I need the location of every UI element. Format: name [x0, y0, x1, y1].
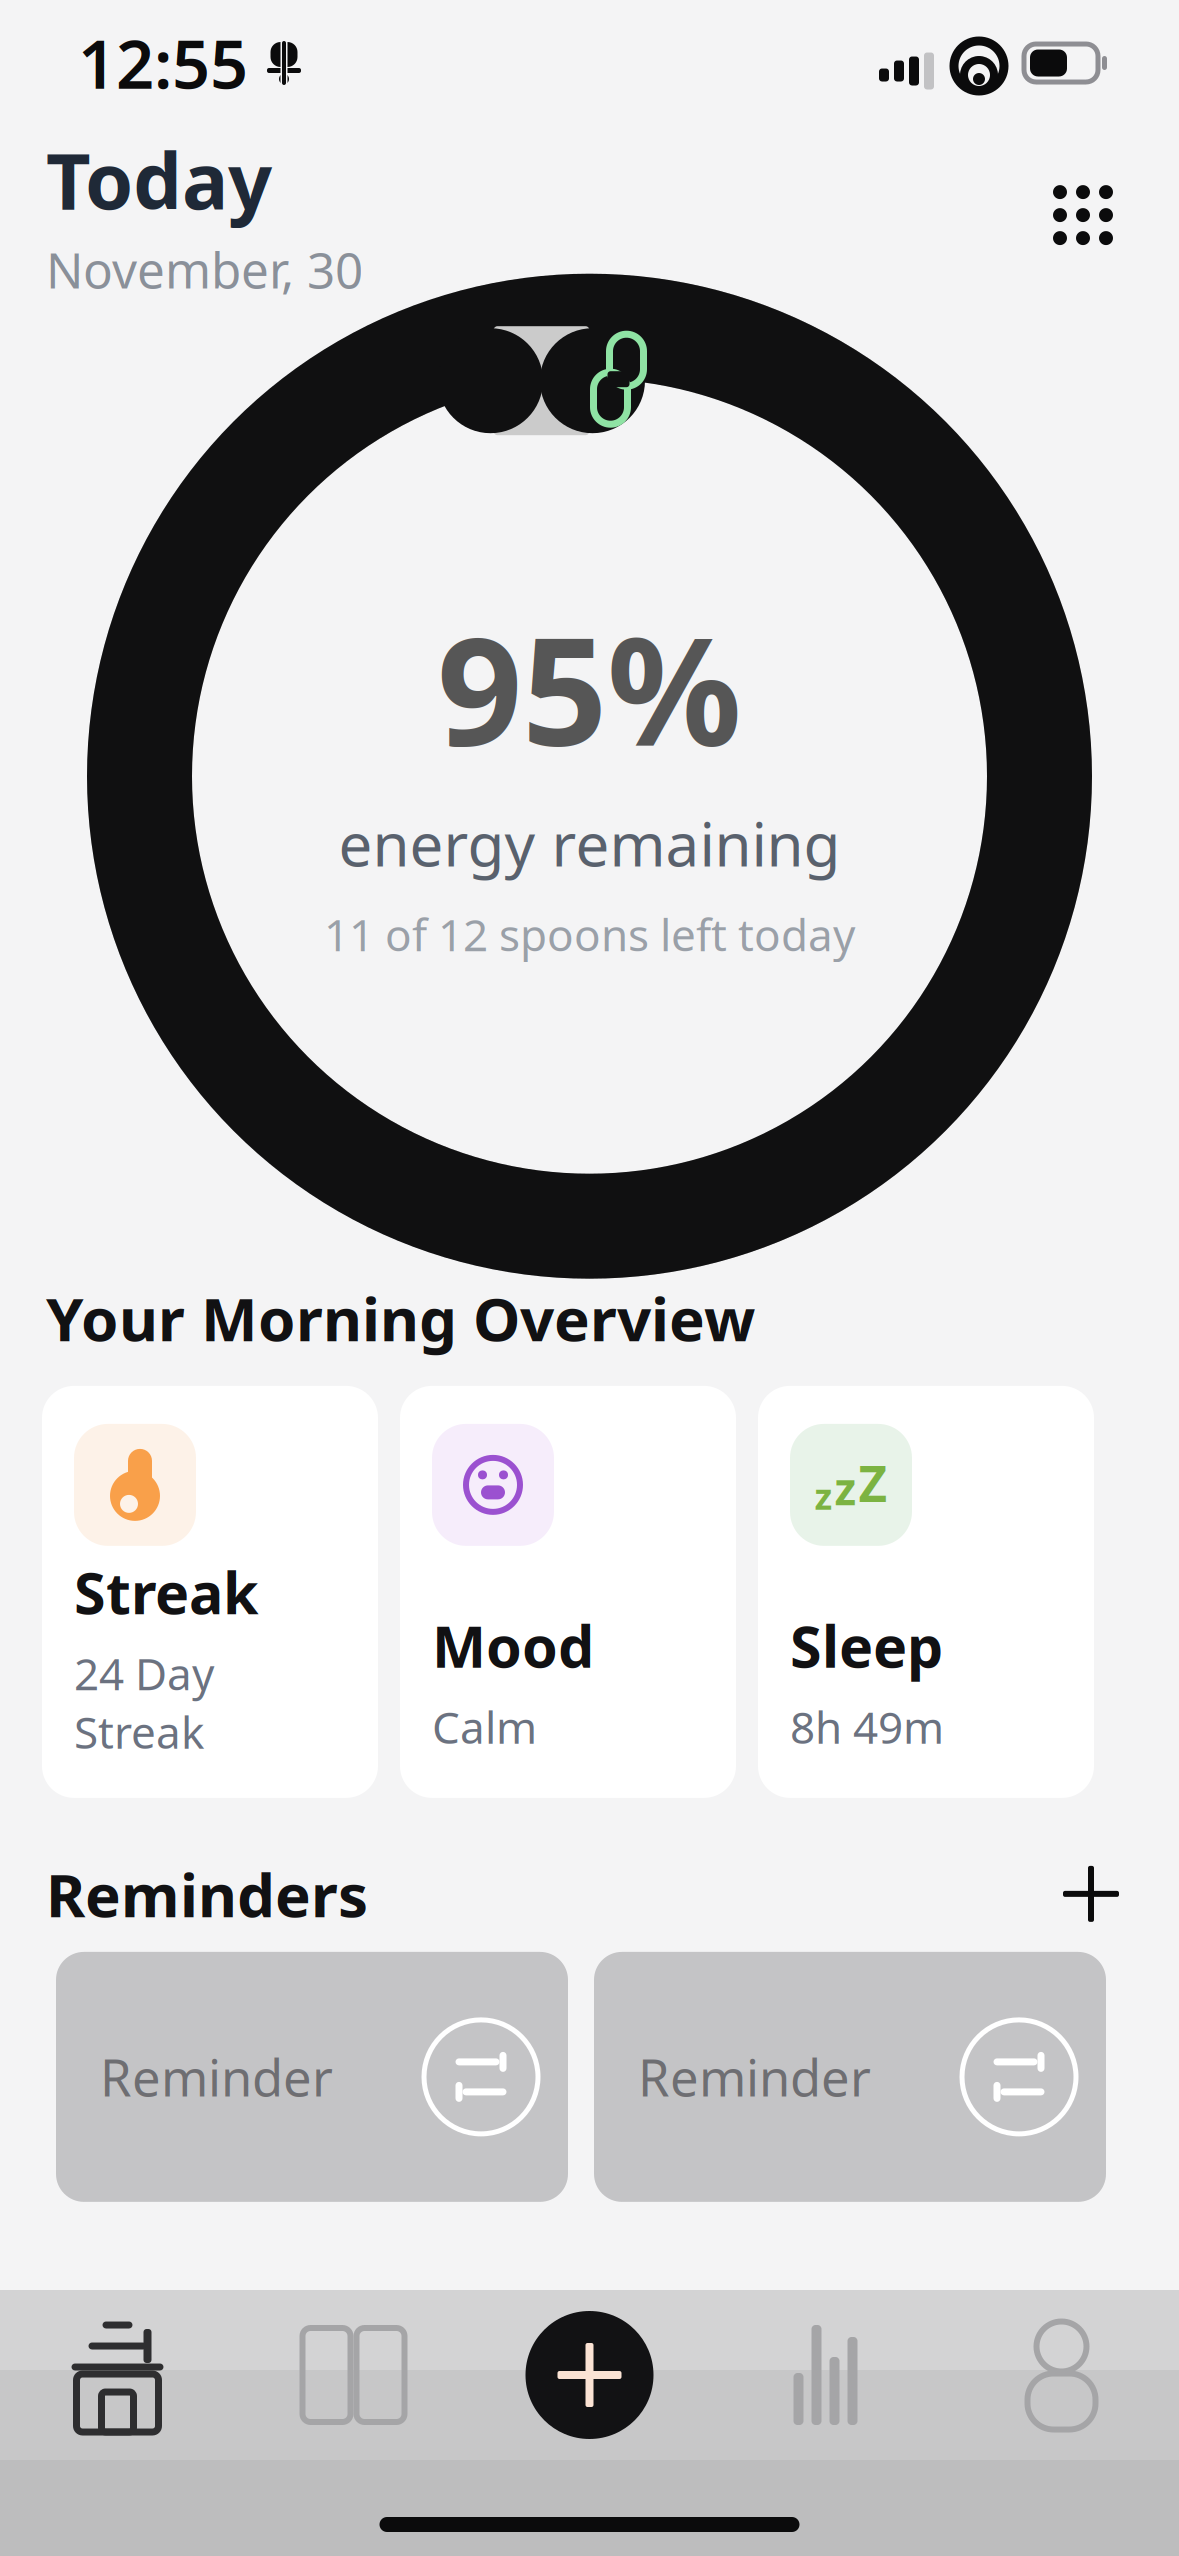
staticText: z	[834, 1459, 856, 1517]
staticText: Reminder	[100, 2043, 333, 2110]
staticText: Today	[46, 128, 272, 231]
button[interactable]: Insights	[707, 2290, 943, 2460]
staticText: Z	[858, 1450, 887, 1515]
button[interactable]: z	[758, 1386, 1094, 1798]
staticText: 12:55	[78, 19, 248, 107]
button[interactable]: Reminder	[594, 1952, 1106, 2202]
button[interactable]: Profile	[943, 2290, 1179, 2460]
staticText: 24 Day Streak	[74, 1644, 214, 1761]
staticText: November, 30	[46, 237, 363, 302]
staticText: Reminders	[46, 1854, 368, 1934]
button[interactable]: Mood	[400, 1386, 736, 1798]
button[interactable]: Streak	[42, 1386, 378, 1798]
button[interactable]: Add reminder	[1049, 1852, 1133, 1936]
staticText: 11 of 12 spoons left today	[324, 905, 855, 963]
staticText: Sleep	[790, 1607, 943, 1683]
staticText: 95%	[437, 589, 742, 787]
staticText: Reminder	[638, 2043, 871, 2110]
staticText: Your Morning Overview	[46, 1278, 755, 1358]
button[interactable]: Home	[0, 2290, 235, 2460]
staticText: z	[814, 1472, 832, 1520]
button[interactable]: Reminder	[56, 1952, 568, 2202]
button[interactable]: App grid	[1033, 165, 1133, 265]
staticText: Mood	[432, 1607, 594, 1683]
staticText: energy remaining	[338, 803, 840, 883]
staticText: Calm	[432, 1697, 537, 1756]
staticText: 8h 49m	[790, 1697, 944, 1756]
button[interactable]: Journal	[235, 2290, 471, 2460]
button[interactable]: Add entry	[471, 2290, 707, 2460]
staticText: Streak	[74, 1554, 259, 1630]
